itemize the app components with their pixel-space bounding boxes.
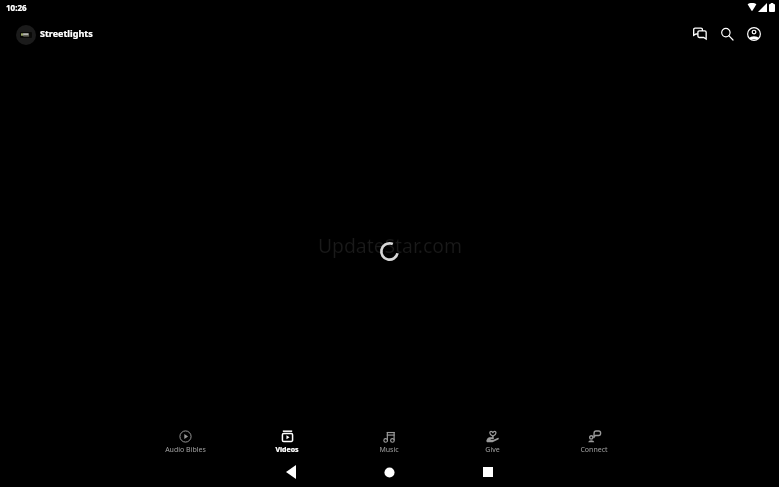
button[interactable]: Streetlights logo [16, 25, 36, 45]
button[interactable]: Videos [251, 427, 323, 461]
staticText: Give [485, 445, 500, 455]
staticText: Audio Bibles [165, 445, 206, 455]
button[interactable]: Search [713, 20, 740, 47]
button[interactable]: Music [353, 427, 425, 461]
button[interactable]: Back [277, 458, 305, 486]
button[interactable]: Audio Bibles [149, 427, 221, 461]
staticText: UpdateStar.com [318, 232, 462, 258]
staticText: Music [379, 445, 399, 455]
button[interactable]: Give [456, 427, 528, 461]
staticText: 10:26 [6, 2, 27, 13]
staticText: Connect [580, 445, 608, 455]
button[interactable]: Recent apps [474, 458, 502, 486]
staticText: Streetlights [40, 27, 93, 39]
button[interactable]: Home [375, 458, 403, 486]
staticText: Videos [275, 445, 299, 455]
button[interactable]: Connect [558, 427, 630, 461]
button[interactable]: Account [740, 20, 767, 47]
button[interactable]: Messages [686, 20, 713, 47]
